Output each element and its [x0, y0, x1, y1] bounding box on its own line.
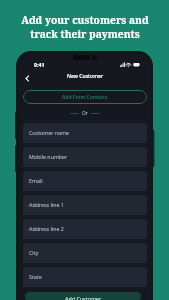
button[interactable]: Customer name — [23, 123, 147, 143]
staticText: track their payments — [30, 27, 140, 41]
button[interactable]: City — [23, 243, 147, 263]
staticText: 9:41 — [34, 61, 45, 68]
button[interactable]: Mobile number — [23, 147, 147, 167]
staticText: Add From Contacts — [62, 94, 108, 101]
staticText: Email — [29, 177, 43, 184]
staticText: Mobile number — [29, 153, 68, 160]
staticText: New Customer — [67, 73, 104, 80]
staticText: City — [29, 249, 39, 256]
button[interactable]: Add From Contacts — [23, 90, 147, 104]
button[interactable]: Back — [20, 71, 34, 85]
staticText: State — [29, 273, 42, 280]
staticText: Customer name — [29, 129, 69, 136]
button[interactable]: Address line 1 — [23, 195, 147, 215]
button[interactable]: Add Customer — [25, 292, 141, 300]
staticText: Add Customer — [65, 295, 102, 300]
button[interactable]: Email — [23, 171, 147, 191]
staticText: Address line 2 — [29, 225, 64, 232]
staticText: Address line 1 — [29, 201, 64, 208]
staticText: Add your customers and — [21, 13, 149, 27]
button[interactable]: State — [23, 267, 147, 287]
staticText: Or — [82, 110, 88, 117]
button[interactable]: Address line 2 — [23, 219, 147, 239]
